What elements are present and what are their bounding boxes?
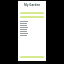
staticText: My Garden bbox=[24, 3, 41, 7]
button[interactable] bbox=[20, 16, 44, 18]
button[interactable] bbox=[20, 12, 44, 14]
button[interactable] bbox=[20, 56, 44, 58]
